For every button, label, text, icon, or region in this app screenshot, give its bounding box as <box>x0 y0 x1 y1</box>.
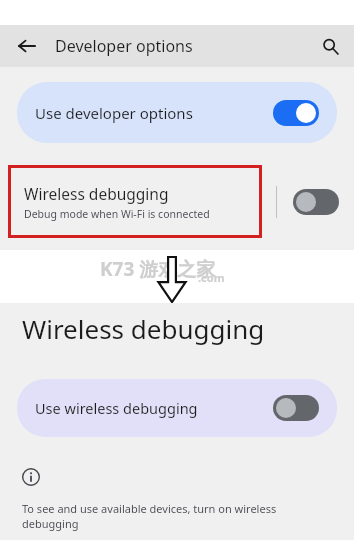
staticText: Developer options <box>55 35 193 57</box>
staticText: K73 游戏之家 <box>100 256 216 282</box>
staticText: Wireless debugging <box>24 183 169 204</box>
button[interactable]: Toggle <box>273 395 319 421</box>
staticText: Wireless debugging <box>22 311 265 346</box>
button[interactable]: Wireless debugging <box>0 165 354 238</box>
button[interactable]: Wireless debugging toggle <box>277 165 354 238</box>
button[interactable]: Back <box>11 30 43 62</box>
staticText: Use developer options <box>35 103 273 123</box>
button[interactable]: Toggle <box>273 100 319 126</box>
button[interactable]: Search <box>314 30 346 62</box>
staticText: .com <box>198 270 225 285</box>
staticText: To see and use available devices, turn o… <box>22 501 277 531</box>
button[interactable]: Use wireless debugging <box>17 379 337 437</box>
button[interactable]: Use developer options <box>17 82 337 143</box>
staticText: Use wireless debugging <box>35 398 273 418</box>
button[interactable]: Toggle <box>293 189 339 215</box>
staticText: Debug mode when Wi-Fi is connected <box>24 207 210 221</box>
